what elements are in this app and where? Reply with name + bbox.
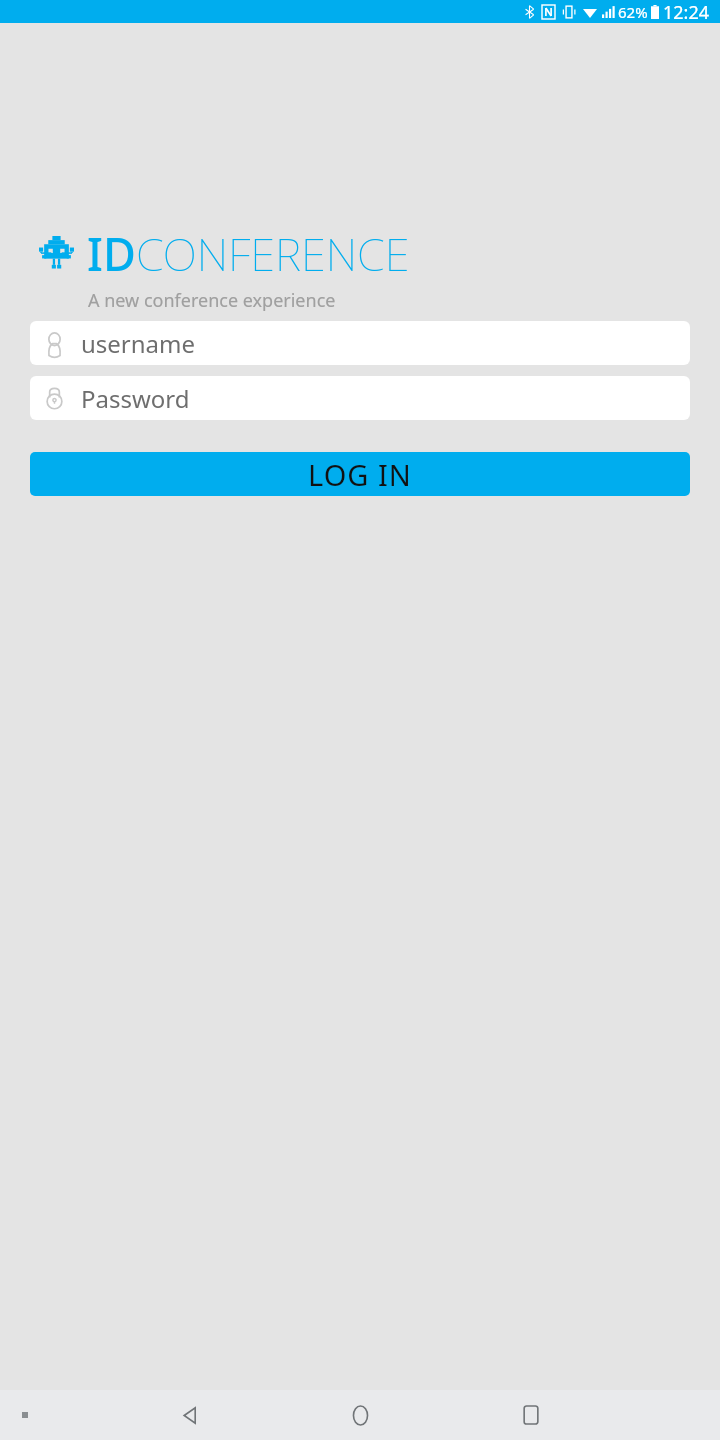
button[interactable]: Recent apps (514, 1398, 548, 1432)
button[interactable]: username (30, 321, 690, 365)
staticText: ID (87, 223, 136, 284)
staticText: A new conference experience (88, 288, 336, 313)
staticText: CONFERENCE (136, 223, 410, 284)
staticText: 12:24 (663, 0, 710, 23)
button[interactable]: Password (30, 376, 690, 420)
staticText: Password (81, 382, 190, 415)
button[interactable]: LOG IN (30, 452, 690, 496)
staticText: LOG IN (308, 455, 412, 494)
button[interactable]: Back (172, 1398, 206, 1432)
staticText: username (81, 327, 196, 360)
staticText: 62% (618, 2, 648, 22)
button[interactable]: Home (343, 1398, 377, 1432)
